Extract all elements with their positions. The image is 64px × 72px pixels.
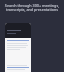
button[interactable]	[5, 23, 31, 72]
staticText: Search through 300+ meetings, transcript…	[3, 3, 61, 12]
